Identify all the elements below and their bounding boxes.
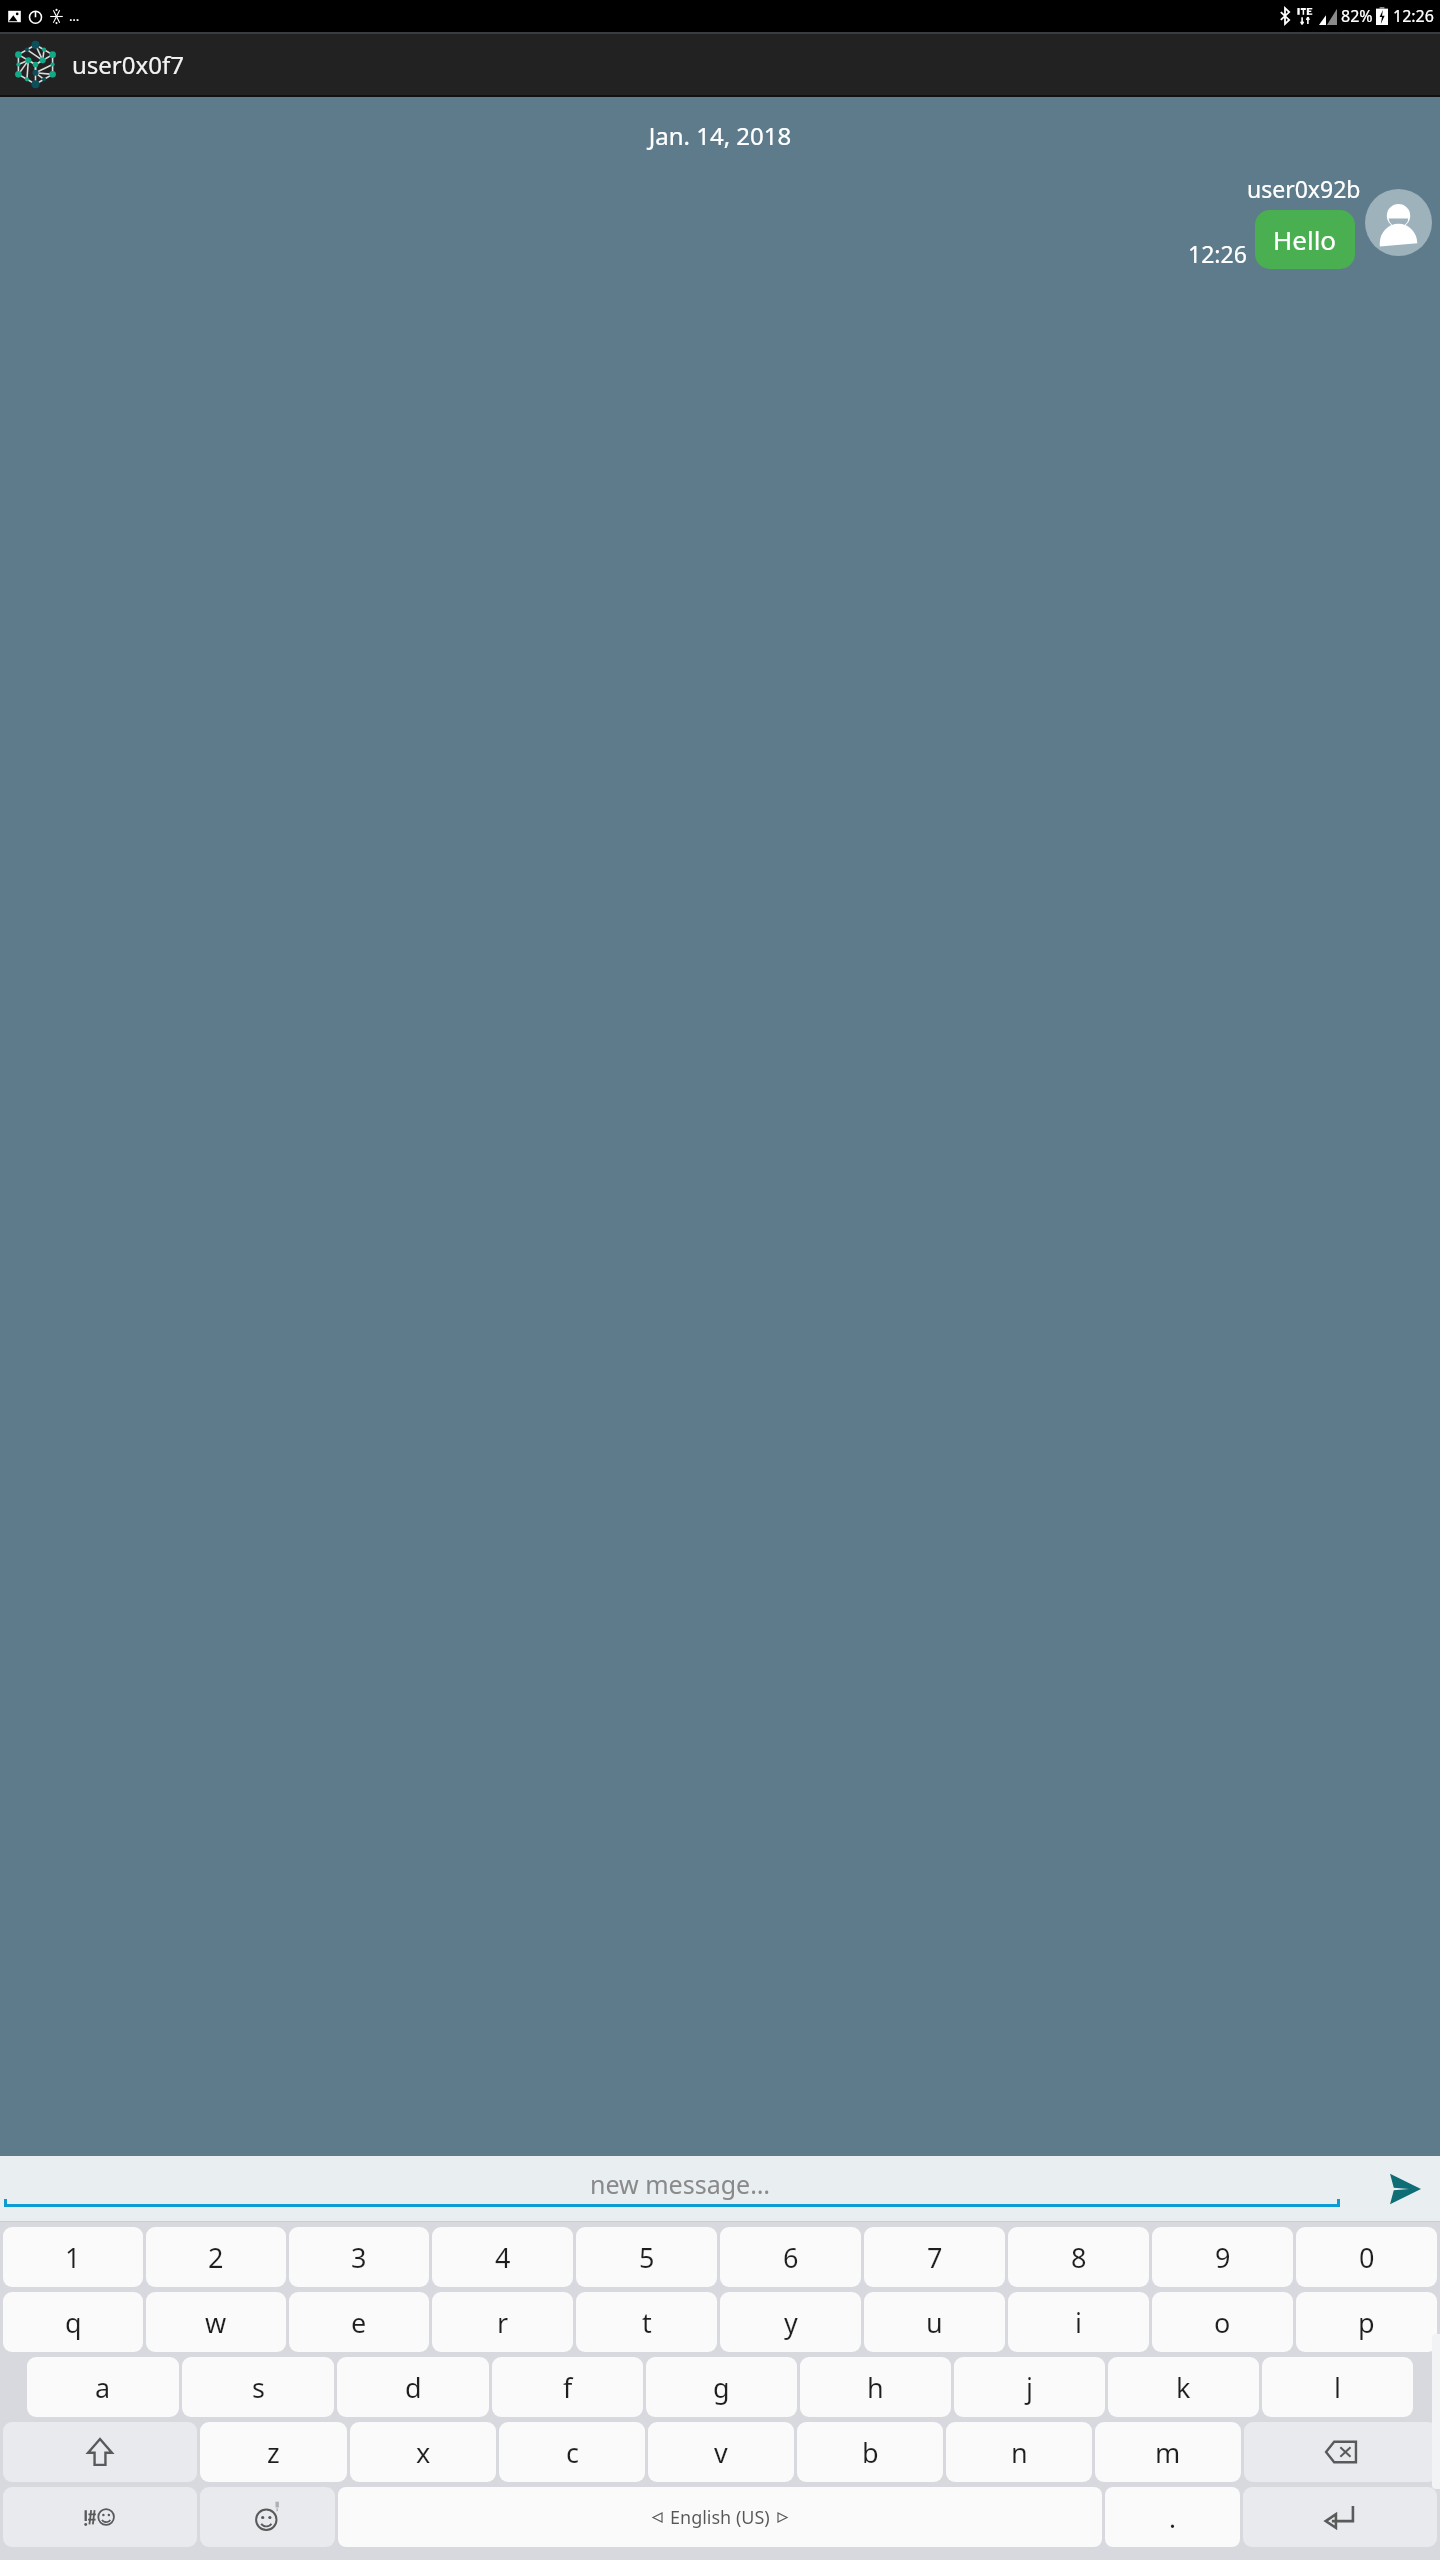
button[interactable]: a	[27, 2357, 179, 2417]
button[interactable]: j	[954, 2357, 1105, 2417]
staticText: 3	[351, 2239, 367, 2276]
staticText: 6	[783, 2239, 799, 2276]
button[interactable]: u	[864, 2292, 1005, 2352]
button[interactable]: 5	[576, 2227, 717, 2287]
staticText: 4	[495, 2239, 511, 2276]
staticText: e	[351, 2304, 367, 2341]
staticText: w	[205, 2304, 227, 2341]
button[interactable]: y	[720, 2292, 861, 2352]
button[interactable]: x	[350, 2422, 496, 2482]
button[interactable]: m	[1095, 2422, 1241, 2482]
button[interactable]: d	[337, 2357, 489, 2417]
staticText: n	[1011, 2434, 1028, 2471]
button[interactable]: s	[182, 2357, 334, 2417]
staticText: 12:26	[1188, 238, 1247, 269]
button[interactable]: Backspace	[1244, 2422, 1437, 2482]
staticText: new message…	[590, 2167, 770, 2201]
staticText: h	[867, 2369, 884, 2406]
staticText: x	[416, 2434, 431, 2471]
button[interactable]: Enter	[1243, 2487, 1437, 2547]
staticText: 9	[1215, 2239, 1231, 2276]
staticText: c	[566, 2434, 579, 2471]
button[interactable]: v	[648, 2422, 794, 2482]
button[interactable]: n	[946, 2422, 1092, 2482]
staticText: t	[642, 2304, 652, 2341]
button[interactable]: 1	[3, 2227, 143, 2287]
button[interactable]: o	[1152, 2292, 1293, 2352]
staticText: u	[926, 2304, 943, 2341]
button[interactable]: 2	[146, 2227, 286, 2287]
button[interactable]: Emoji	[200, 2487, 335, 2547]
button[interactable]: f	[492, 2357, 643, 2417]
staticText: s	[252, 2369, 265, 2406]
button[interactable]: Symbols	[3, 2487, 197, 2547]
button[interactable]: Shift	[3, 2422, 197, 2482]
button[interactable]: user0x0f7	[0, 34, 1440, 95]
button[interactable]: h	[800, 2357, 951, 2417]
staticText: g	[713, 2369, 730, 2406]
staticText: 7	[927, 2239, 943, 2276]
staticText: user0x92b	[1247, 173, 1361, 204]
button[interactable]: w	[146, 2292, 286, 2352]
button[interactable]: 9	[1152, 2227, 1293, 2287]
button[interactable]: new message…	[4, 2156, 1340, 2222]
button[interactable]: .	[1105, 2487, 1240, 2547]
staticText: a	[95, 2369, 111, 2406]
staticText: i	[1075, 2304, 1082, 2341]
button[interactable]: q	[3, 2292, 143, 2352]
button[interactable]: l	[1262, 2357, 1413, 2417]
staticText: .	[1169, 2500, 1176, 2535]
button[interactable]: 3	[289, 2227, 429, 2287]
staticText: 2	[208, 2239, 224, 2276]
button[interactable]: 6	[720, 2227, 861, 2287]
button[interactable]: Send	[1370, 2156, 1440, 2222]
button[interactable]: English (US)	[338, 2487, 1102, 2547]
button[interactable]: 4	[432, 2227, 573, 2287]
button[interactable]: p	[1296, 2292, 1437, 2352]
staticText: 12:26	[1393, 5, 1434, 27]
button[interactable]: z	[200, 2422, 347, 2482]
staticText: user0x0f7	[72, 48, 184, 81]
button[interactable]: 0	[1296, 2227, 1437, 2287]
button[interactable]: e	[289, 2292, 429, 2352]
button[interactable]: i	[1008, 2292, 1149, 2352]
staticText: English (US)	[670, 2505, 770, 2530]
staticText: 82%	[1341, 5, 1373, 27]
staticText: 5	[639, 2239, 655, 2276]
staticText: v	[714, 2434, 728, 2471]
button[interactable]: Contact avatar	[1365, 189, 1432, 256]
staticText: l	[1334, 2369, 1341, 2406]
staticText: k	[1176, 2369, 1191, 2406]
button[interactable]: g	[646, 2357, 797, 2417]
staticText: Jan. 14, 2018	[0, 119, 1440, 152]
button[interactable]: c	[499, 2422, 645, 2482]
button[interactable]: k	[1108, 2357, 1259, 2417]
button[interactable]: b	[797, 2422, 943, 2482]
button[interactable]: r	[432, 2292, 573, 2352]
staticText: r	[497, 2304, 509, 2341]
button[interactable]: 7	[864, 2227, 1005, 2287]
staticText: y	[784, 2304, 798, 2341]
staticText: 1	[65, 2239, 81, 2276]
staticText: j	[1026, 2369, 1033, 2406]
staticText: b	[862, 2434, 879, 2471]
button[interactable]: 8	[1008, 2227, 1149, 2287]
staticText: f	[563, 2369, 573, 2406]
staticText: p	[1358, 2304, 1375, 2341]
staticText: z	[267, 2434, 280, 2471]
button[interactable]: Hello	[1255, 210, 1355, 269]
staticText: 8	[1071, 2239, 1087, 2276]
staticText: m	[1155, 2434, 1181, 2471]
staticText: Hello	[1273, 222, 1337, 257]
button[interactable]: t	[576, 2292, 717, 2352]
staticText: …	[69, 7, 80, 25]
staticText: o	[1214, 2304, 1231, 2341]
staticText: d	[405, 2369, 422, 2406]
staticText: 0	[1359, 2239, 1375, 2276]
staticText: q	[65, 2304, 82, 2341]
